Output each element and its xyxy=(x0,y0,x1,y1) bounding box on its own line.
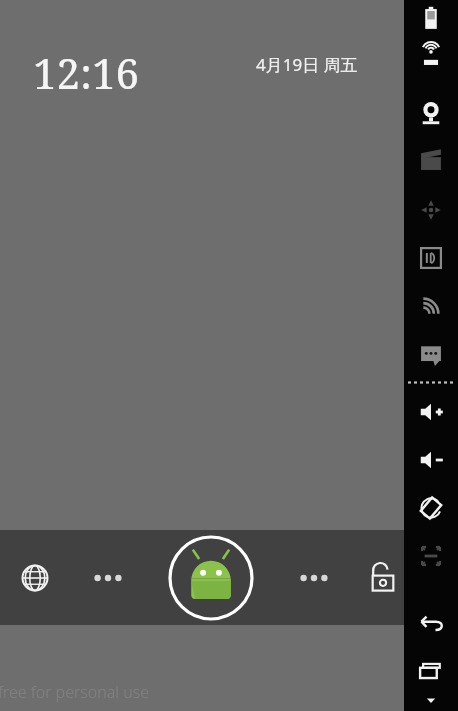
button[interactable]: Browser xyxy=(14,557,56,599)
button[interactable]: More apps xyxy=(88,563,128,593)
button[interactable]: More apps xyxy=(294,563,334,593)
button[interactable]: Back xyxy=(404,604,458,642)
staticText: 4月19日 周五 xyxy=(256,53,358,76)
button[interactable]: D-pad xyxy=(404,191,458,229)
staticText: free for personal use xyxy=(0,681,150,703)
button[interactable]: ID xyxy=(404,239,458,277)
button[interactable]: Signal xyxy=(404,287,458,325)
button[interactable]: All apps xyxy=(168,535,254,621)
button[interactable]: More xyxy=(404,681,458,711)
button[interactable]: Volume down xyxy=(404,441,458,479)
button[interactable]: Actual size xyxy=(404,537,458,575)
button[interactable]: Unlock xyxy=(362,557,404,599)
button[interactable]: Rotate xyxy=(404,489,458,527)
button[interactable]: Record video xyxy=(404,142,458,180)
button[interactable]: Webcam xyxy=(404,94,458,132)
button[interactable]: GPS xyxy=(404,37,458,75)
button[interactable]: Messages xyxy=(404,335,458,373)
staticText: 12:16 xyxy=(33,44,139,101)
button[interactable]: Volume up xyxy=(404,393,458,431)
button[interactable]: Battery xyxy=(404,0,458,37)
button[interactable]: Recents xyxy=(404,652,458,690)
